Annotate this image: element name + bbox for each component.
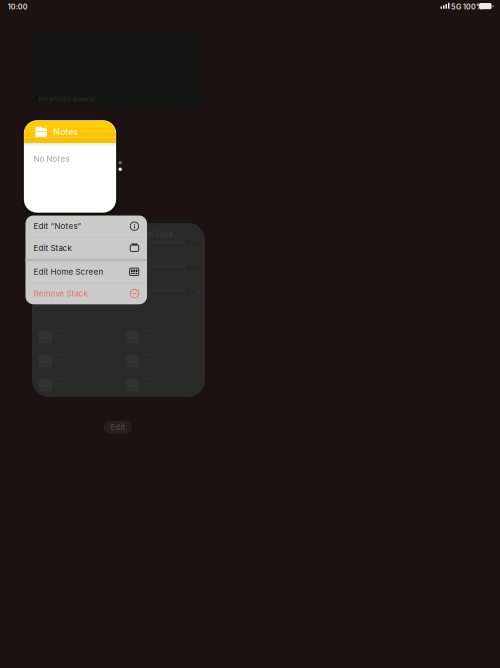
button[interactable]: Edit Home Screen [25,261,147,282]
staticText: Notes [53,126,78,137]
button[interactable]: Edit Stack [25,237,147,259]
staticText: No Notes [34,154,70,164]
staticText: Edit [110,423,125,432]
staticText: Screen Time… [128,230,179,239]
staticText: 5G 100% [451,3,483,11]
button[interactable]: Edit [104,420,132,434]
button[interactable]: Edit “Notes” [25,216,147,237]
staticText: No photos available [38,96,95,103]
staticText: Edit Stack [33,243,71,253]
staticText: 10:00 [8,3,28,11]
staticText: Edit “Notes” [33,221,81,231]
staticText: Edit Home Screen [33,267,103,277]
button[interactable]: Remove Stack [25,283,147,304]
button[interactable]: Screen Time widget [32,223,205,397]
staticText: Remove Stack [33,289,87,298]
button[interactable]: Notes widget [24,120,116,212]
